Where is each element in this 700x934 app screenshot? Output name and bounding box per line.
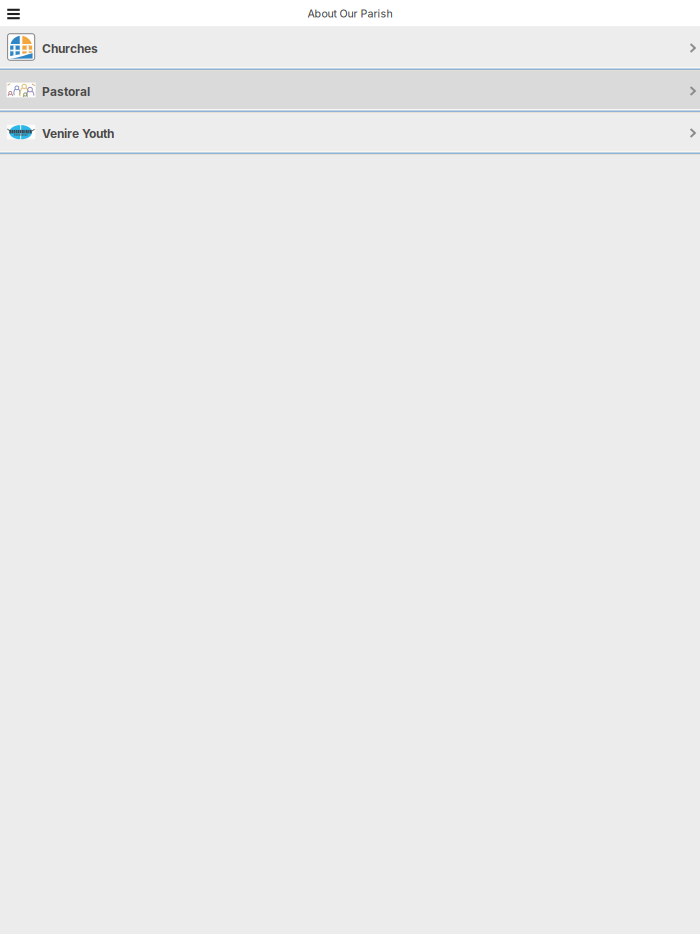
- staticText: Churches: [42, 41, 98, 56]
- button[interactable]: Menu: [0, 0, 27, 27]
- staticText: Venire Youth: [42, 126, 114, 141]
- button[interactable]: Venire Youth: [0, 113, 700, 151]
- button[interactable]: Pastoral: [0, 71, 700, 109]
- staticText: Pastoral: [42, 84, 90, 99]
- button[interactable]: Churches: [0, 27, 700, 67]
- staticText: About Our Parish: [307, 7, 392, 20]
